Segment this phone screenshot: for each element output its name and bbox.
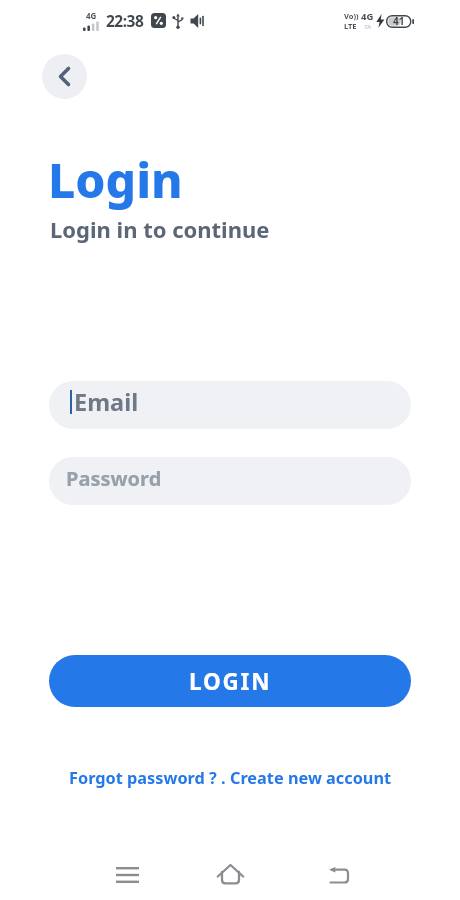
staticText: TA (364, 23, 372, 31)
staticText: 22:38 (106, 10, 144, 31)
staticText: 4G (86, 10, 97, 21)
button[interactable] (42, 54, 87, 99)
button[interactable] (214, 858, 246, 890)
button[interactable]: Email (49, 381, 411, 429)
staticText: Password (66, 465, 162, 492)
staticText: Login in to continue (50, 214, 270, 244)
staticText: LOGIN (189, 666, 272, 697)
staticText: 4G (361, 10, 374, 23)
button[interactable]: Forgot password ? . Create new account (69, 767, 392, 789)
staticText: Forgot password ? . Create new account (69, 767, 392, 789)
button[interactable]: Password (49, 457, 411, 505)
staticText: 41 (393, 14, 405, 28)
staticText: LTE (344, 21, 357, 31)
staticText: Email (74, 386, 139, 418)
staticText: Vo)) (344, 11, 359, 21)
button[interactable] (323, 859, 355, 891)
button[interactable]: LOGIN (49, 655, 411, 707)
staticText: Login (48, 147, 183, 212)
button[interactable] (112, 860, 142, 890)
